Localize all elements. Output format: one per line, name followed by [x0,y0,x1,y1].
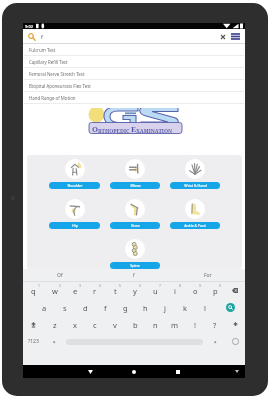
staticText: 1 [38,283,40,288]
staticText: Femoral Nerve Stretch Test [29,71,85,77]
button[interactable]: ! [185,316,205,333]
staticText: 8 [179,283,181,288]
staticText: h [143,303,148,313]
staticText: x [73,320,77,330]
button[interactable]: Recents [165,365,191,378]
button[interactable]: n [145,316,165,333]
button[interactable]: Clear search [218,32,228,42]
button[interactable]: p [205,282,225,299]
button[interactable]: c [85,316,105,333]
button[interactable]: Home [121,365,147,378]
button[interactable]: g [115,299,135,316]
staticText: Shoulder [67,183,83,188]
button[interactable]: b [125,316,145,333]
staticText: 9:02 [25,24,33,29]
button[interactable]: For [171,269,245,282]
button[interactable]: Capillary Refill Test [24,56,244,68]
staticText: 3 [79,283,81,288]
button[interactable]: Spine [110,239,160,269]
staticText: c [93,320,97,330]
staticText: l [204,303,206,313]
button[interactable]: y [125,282,145,299]
button[interactable]: Back [77,365,103,378]
button[interactable]: k [175,299,195,316]
button[interactable]: z [44,316,65,333]
button[interactable]: d [75,299,95,316]
staticText: Elbow [130,183,141,188]
staticText: XAMINATION [136,127,173,134]
staticText: n [153,320,158,330]
staticText: q [31,286,36,296]
button[interactable]: Hand Range of Motion [24,92,244,104]
button[interactable]: j [155,299,175,316]
button[interactable]: Fulcrum Test [24,44,244,56]
staticText: f [41,33,43,40]
staticText: RTHOPEDIC [98,127,131,134]
staticText: o [193,286,198,296]
button[interactable]: Hide keyboard [229,365,245,378]
button[interactable]: Femoral Nerve Stretch Test [24,68,244,80]
staticText: 9 [199,283,201,288]
button[interactable]: Hip [49,199,100,229]
staticText: f [104,303,107,313]
button[interactable]: Search [26,31,38,43]
staticText: u [153,286,158,296]
staticText: Wrist & Hand [184,183,207,188]
staticText: m [171,320,179,330]
button[interactable]: l [195,299,215,316]
button[interactable]: ? [205,316,225,333]
staticText: ?123 [28,338,39,345]
button[interactable]: Menu [229,30,242,43]
button[interactable]: x [65,316,85,333]
button[interactable]: f [97,269,171,282]
button[interactable]: Of [23,269,97,282]
button[interactable]: r [85,282,105,299]
staticText: 7 [159,283,161,288]
button[interactable]: q [23,282,44,299]
button[interactable]: t [105,282,125,299]
button[interactable]: Backspace [225,282,245,299]
button[interactable]: Shift [23,316,44,333]
staticText: O [92,124,98,134]
staticText: ! [194,320,197,330]
staticText: 5 [119,283,121,288]
button[interactable]: Period [205,333,225,350]
staticText: j [164,303,166,313]
button[interactable]: Elbow [110,159,160,189]
button[interactable]: ?123 [23,333,44,350]
button[interactable]: Shift [225,316,245,333]
staticText: Ankle & Foot [184,223,206,228]
button[interactable]: f [95,299,115,316]
staticText: w [52,286,58,296]
staticText: b [133,320,138,330]
button[interactable]: o [185,282,205,299]
button[interactable]: Knee [110,199,160,229]
button[interactable]: Shoulder [49,159,100,189]
staticText: g [123,303,128,313]
button[interactable]: m [165,316,185,333]
staticText: Spine [130,263,140,268]
button[interactable]: u [145,282,165,299]
staticText: d [83,303,88,313]
button[interactable]: v [105,316,125,333]
button[interactable]: e [65,282,85,299]
button[interactable]: Search [215,299,245,316]
button[interactable]: Bicipital Aponeurosis Flex Test [24,80,244,92]
button[interactable]: Ankle & Foot [170,199,220,229]
staticText: 4 [99,283,101,288]
staticText: For [204,272,212,279]
staticText: Of [57,272,63,279]
button[interactable]: a [34,299,55,316]
button[interactable]: i [165,282,185,299]
button[interactable]: s [55,299,75,316]
staticText: ? [213,320,217,330]
button[interactable]: Comma [44,333,64,350]
staticText: e [73,286,78,296]
button[interactable]: w [44,282,65,299]
button[interactable]: h [135,299,155,316]
staticText: Hip [72,223,78,228]
button[interactable]: Emoji [225,333,245,350]
staticText: Fulcrum Test [29,47,56,53]
button[interactable]: Wrist & Hand [170,159,220,189]
